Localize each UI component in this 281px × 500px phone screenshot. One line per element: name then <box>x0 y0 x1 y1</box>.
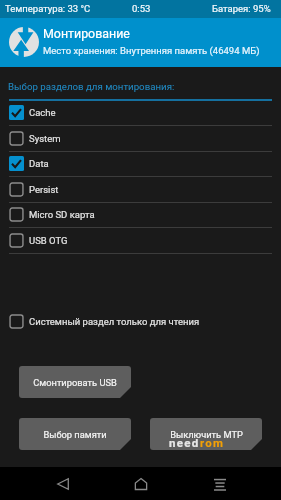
button[interactable]: Cache <box>0 100 281 126</box>
staticText: Место хранения: Внутренняя память (46494… <box>43 45 260 56</box>
button[interactable]: Выключить МТР <box>150 418 262 450</box>
staticText: Micro SD карта <box>29 209 95 220</box>
staticText: System <box>29 133 61 144</box>
staticText: Выбор разделов для монтирования: <box>8 81 175 92</box>
button[interactable]: Micro SD карта <box>0 202 281 228</box>
staticText: Cache <box>29 107 56 118</box>
staticText: Смонтировать USB <box>33 377 117 388</box>
button[interactable]: Data <box>0 151 281 177</box>
staticText: USB OTG <box>29 235 68 246</box>
button[interactable]: Persist <box>0 177 281 203</box>
button[interactable]: Выбор памяти <box>19 418 131 450</box>
button[interactable]: Смонтировать USB <box>19 366 131 398</box>
staticText: rom <box>200 436 225 449</box>
staticText: Data <box>29 158 49 169</box>
button[interactable]: Back <box>41 467 84 500</box>
staticText: Системный раздел только для чтения <box>29 316 200 327</box>
staticText: Persist <box>29 184 59 195</box>
staticText: need <box>169 436 200 449</box>
staticText: Монтирование <box>43 26 130 41</box>
button[interactable]: Recent apps <box>198 467 241 500</box>
staticText: Выбор памяти <box>43 429 107 440</box>
staticText: Выключить МТР <box>170 429 243 440</box>
button[interactable]: Монтирование <box>0 18 281 67</box>
staticText: Батарея: 95% <box>212 3 271 14</box>
button[interactable]: System <box>0 126 281 152</box>
staticText: 0:53 <box>132 3 151 14</box>
button[interactable]: Home <box>119 467 162 500</box>
button[interactable]: USB OTG <box>0 228 281 254</box>
button[interactable]: Системный раздел только для чтения <box>0 313 281 330</box>
staticText: Температура: 33 °C <box>5 3 91 14</box>
